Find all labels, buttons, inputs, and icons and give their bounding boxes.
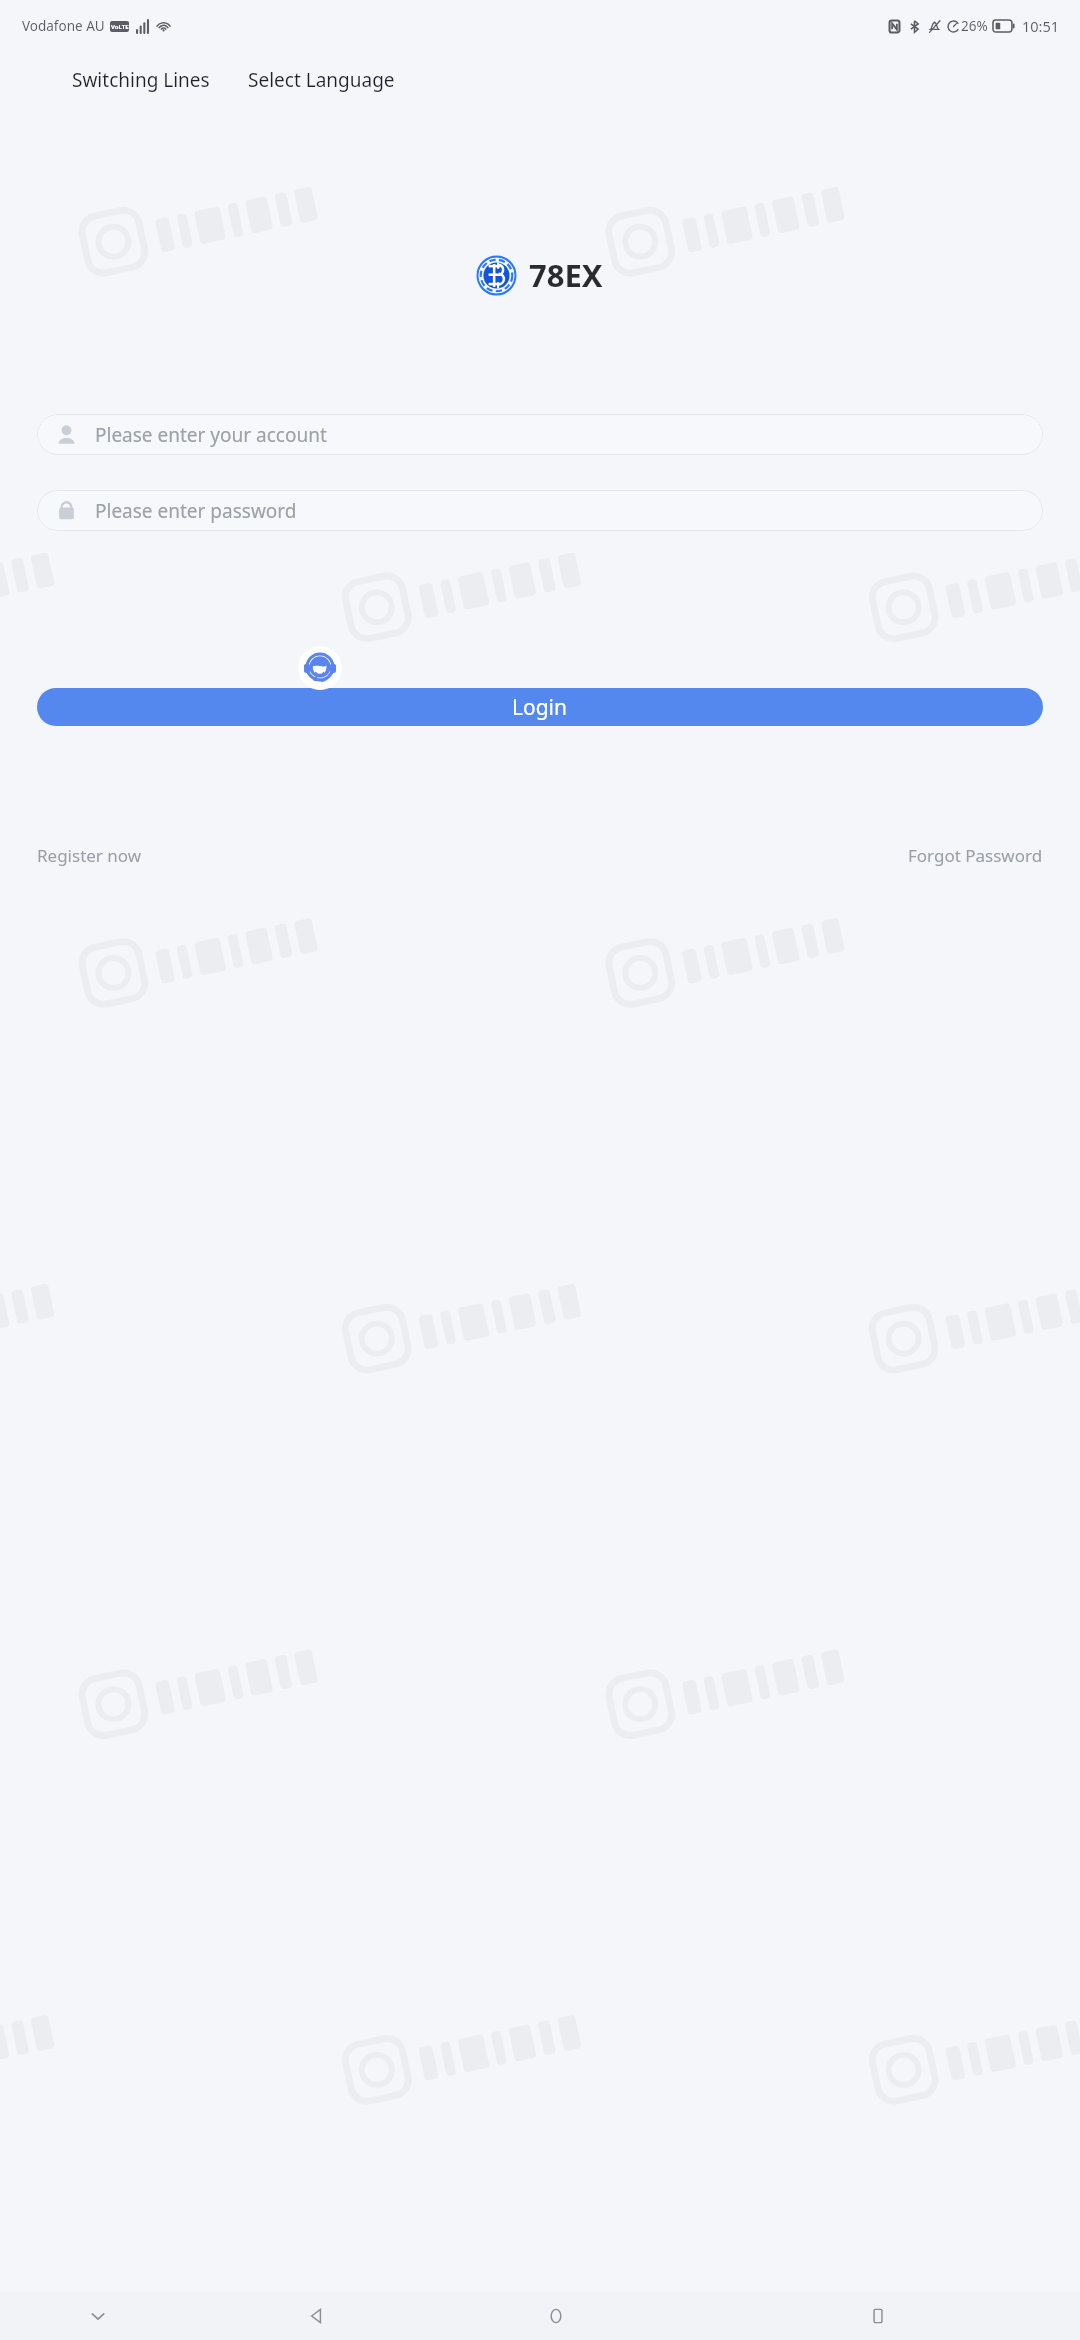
button[interactable]: Switching Lines [64,63,218,97]
staticText: 78EX [529,254,603,296]
button[interactable]: Back [196,2292,436,2340]
button[interactable]: Recents [676,2292,1080,2340]
staticText: 10:51 [1022,16,1060,36]
button[interactable]: Password field [37,490,1043,531]
button[interactable]: Home [436,2292,676,2340]
staticText: Select Language [248,67,395,93]
staticText: VoLTE [111,23,129,31]
staticText: Login [512,693,568,722]
staticText: 26% [961,17,988,35]
button[interactable]: Customer service [298,646,342,690]
button[interactable]: Hide keyboard [0,2292,196,2340]
staticText: Register now [37,844,142,867]
button[interactable]: Select Language [240,63,403,97]
staticText: Switching Lines [72,67,210,93]
staticText: Please enter your account [95,422,327,448]
button[interactable]: Forgot Password [901,839,1050,872]
staticText: Forgot Password [908,844,1043,867]
staticText: Please enter password [95,498,297,524]
button[interactable]: Account field [37,414,1043,455]
button[interactable]: Login [37,688,1043,726]
staticText: Vodafone AU [22,17,105,35]
button[interactable]: Register now [30,839,149,872]
